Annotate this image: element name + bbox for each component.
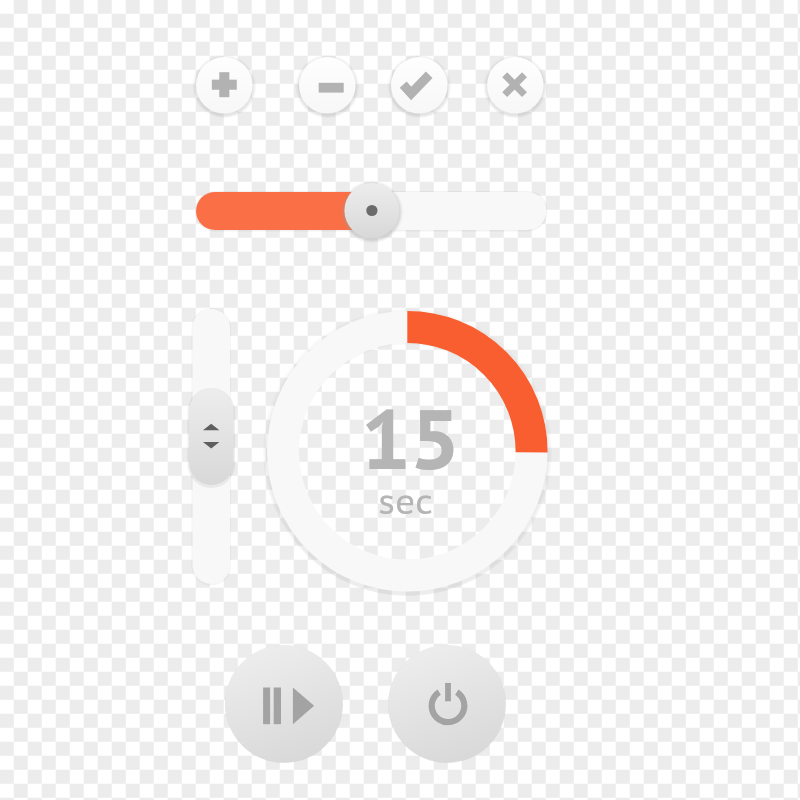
button[interactable]: Play or pause [225,645,343,763]
staticText: sec [378,479,433,523]
button[interactable]: Countdown timer, 15 seconds [263,307,552,596]
button[interactable]: Remove [295,53,360,118]
staticText: 15 [361,385,460,492]
button[interactable]: Volume slider [192,170,550,252]
button[interactable]: Cancel [483,53,548,118]
button[interactable]: Power [388,645,506,763]
button[interactable]: Scroll up or down [189,307,234,586]
button[interactable]: Confirm [387,53,452,118]
button[interactable]: Add [192,53,257,118]
